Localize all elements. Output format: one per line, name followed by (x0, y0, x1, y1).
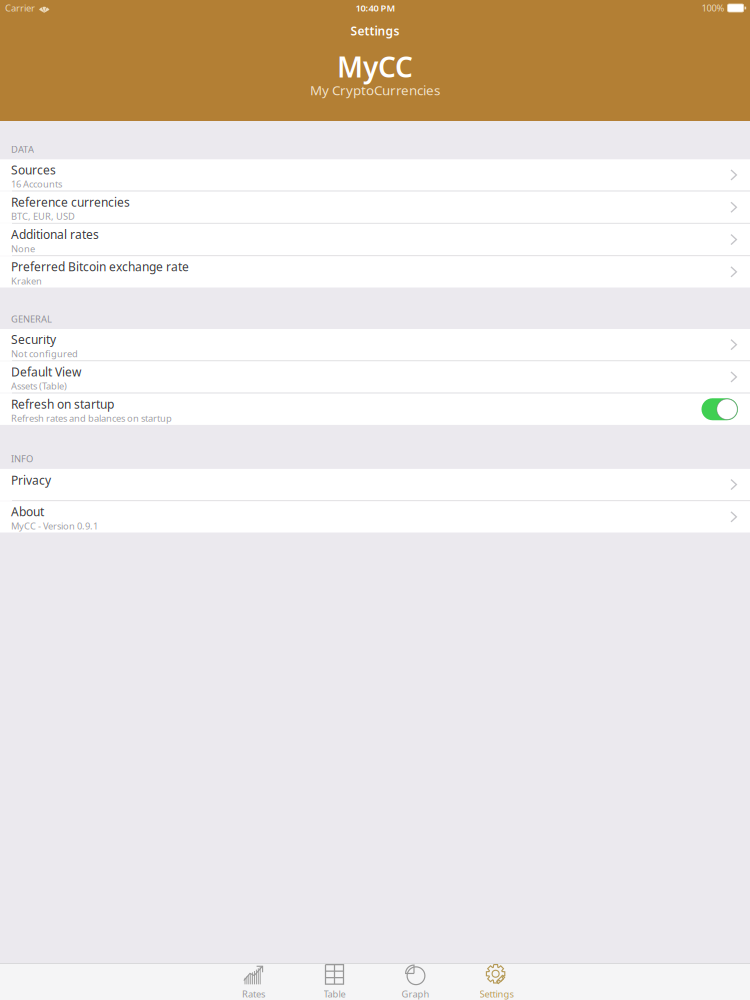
staticText: Graph (401, 988, 429, 1000)
button[interactable]: Privacy (0, 469, 750, 500)
staticText: Default View (11, 364, 81, 380)
button[interactable]: Additional rates (0, 224, 750, 255)
button[interactable]: Graph (375, 964, 456, 1000)
staticText: Kraken (11, 275, 42, 287)
staticText: 100% (702, 2, 725, 14)
button[interactable]: Refresh on startup (0, 394, 750, 425)
button[interactable]: Sources (0, 159, 750, 191)
staticText: None (11, 242, 35, 255)
button[interactable]: Preferred Bitcoin exchange rate (0, 256, 750, 287)
staticText: Carrier (5, 2, 35, 14)
staticText: Security (11, 331, 56, 347)
button[interactable]: Reference currencies (0, 192, 750, 223)
staticText: MyCC - Version 0.9.1 (11, 520, 98, 532)
staticText: Settings (350, 23, 399, 39)
staticText: Settings (479, 988, 513, 1000)
button[interactable]: Table (294, 964, 375, 1000)
staticText: GENERAL (11, 313, 52, 325)
staticText: Reference currencies (11, 194, 130, 210)
staticText: Privacy (11, 472, 51, 488)
staticText: DATA (11, 143, 34, 155)
staticText: 16 Accounts (11, 178, 62, 190)
staticText: Not configured (11, 347, 78, 360)
staticText: Additional rates (11, 226, 99, 242)
staticText: My CryptoCurrencies (310, 81, 440, 99)
button[interactable]: Settings (456, 964, 537, 1000)
staticText: Assets (Table) (11, 380, 67, 392)
staticText: Table (323, 988, 345, 1000)
staticText: Refresh rates and balances on startup (11, 412, 172, 424)
staticText: INFO (11, 452, 33, 465)
staticText: MyCC (337, 48, 413, 85)
button[interactable]: Rates (213, 964, 294, 1000)
staticText: Sources (11, 162, 56, 178)
staticText: Preferred Bitcoin exchange rate (11, 259, 189, 275)
staticText: About (11, 504, 44, 520)
staticText: 10:40 PM (355, 2, 395, 14)
button[interactable]: Security (0, 329, 750, 360)
staticText: Rates (242, 988, 265, 1000)
button[interactable]: About (0, 501, 750, 532)
staticText: BTC, EUR, USD (11, 210, 75, 222)
staticText: Refresh on startup (11, 396, 114, 412)
button[interactable]: Default View (0, 361, 750, 393)
